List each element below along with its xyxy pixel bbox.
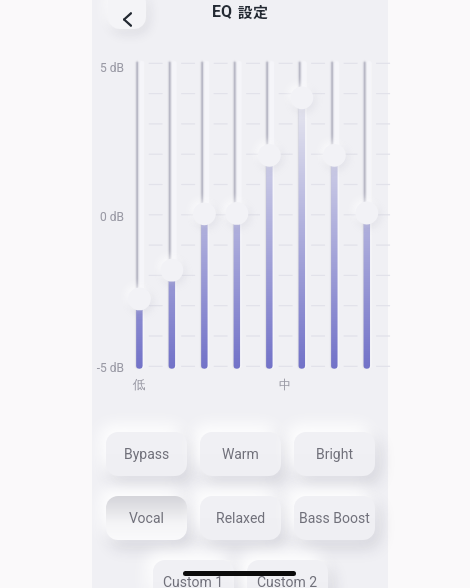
- button[interactable]: Custom 1: [153, 560, 234, 588]
- staticText: Custom 1: [163, 574, 224, 588]
- staticText: Custom 2: [257, 574, 318, 588]
- button[interactable]: Bypass: [106, 432, 187, 476]
- staticText: Relaxed: [216, 510, 266, 526]
- button[interactable]: Bright: [294, 432, 375, 476]
- button[interactable]: Warm: [200, 432, 281, 476]
- staticText: Warm: [222, 446, 259, 462]
- staticText: 0 dB: [92, 210, 124, 224]
- staticText: 設定: [238, 1, 269, 23]
- staticText: Vocal: [129, 510, 164, 526]
- staticText: EQ: [212, 2, 233, 21]
- staticText: Bass Boost: [299, 510, 370, 526]
- staticText: Bypass: [124, 446, 170, 462]
- button[interactable]: Relaxed: [200, 496, 281, 540]
- staticText: 5 dB: [92, 61, 124, 75]
- button[interactable]: Custom 2: [247, 560, 328, 588]
- staticText: -5 dB: [92, 361, 124, 375]
- staticText: Bright: [316, 446, 354, 462]
- button[interactable]: Vocal: [106, 496, 187, 540]
- button[interactable]: Back: [108, 0, 146, 29]
- staticText: 低: [119, 377, 159, 393]
- button[interactable]: Bass Boost: [294, 496, 375, 540]
- staticText: 中: [265, 377, 305, 393]
